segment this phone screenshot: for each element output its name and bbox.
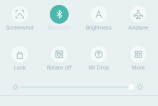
- button[interactable]: Airplane: [118, 4, 158, 32]
- staticText: Rotate off: [47, 64, 72, 71]
- staticText: Lock: [14, 64, 26, 71]
- staticText: Mi Drop: [89, 64, 109, 71]
- staticText: Screenshot: [6, 24, 34, 31]
- staticText: Airplane: [128, 24, 148, 31]
- button[interactable]: Lock: [0, 44, 39, 72]
- button[interactable]: Rotate off: [39, 44, 79, 72]
- button[interactable]: Mi Drop: [79, 44, 118, 72]
- button[interactable]: Screenshot: [0, 4, 39, 32]
- button[interactable]: Brightness: [79, 4, 118, 32]
- button[interactable]: More: [118, 44, 158, 72]
- staticText: Bluetooth: [48, 24, 71, 31]
- button[interactable]: Brightness: [0, 82, 158, 92]
- staticText: More: [132, 64, 145, 71]
- button[interactable]: Bluetooth: [39, 4, 79, 32]
- staticText: Brightness: [86, 24, 112, 31]
